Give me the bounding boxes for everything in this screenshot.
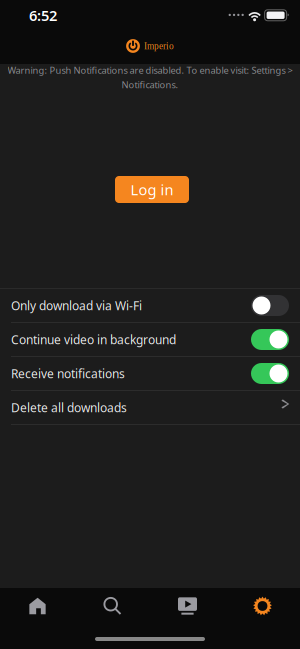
staticText: Receive notifications bbox=[11, 365, 125, 381]
staticText: Warning: Push Notifications are disabled… bbox=[7, 64, 292, 76]
staticText: Only download via Wi-Fi bbox=[11, 297, 142, 313]
staticText: Notifications. bbox=[121, 78, 178, 91]
staticText: Log in bbox=[130, 180, 173, 199]
staticText: 6:52 bbox=[29, 5, 57, 25]
button[interactable]: Search bbox=[75, 596, 150, 616]
button[interactable]: Live TV bbox=[150, 596, 225, 616]
button[interactable]: Continue video in background bbox=[0, 323, 300, 356]
staticText: Imperio bbox=[144, 41, 174, 51]
button[interactable]: Home bbox=[0, 596, 75, 616]
button[interactable]: Only download via Wi-Fi bbox=[0, 289, 300, 322]
button[interactable]: Log in bbox=[115, 176, 189, 203]
button[interactable]: Receive notifications bbox=[0, 357, 300, 390]
staticText: Delete all downloads bbox=[11, 399, 127, 415]
button[interactable]: Delete all downloads bbox=[0, 391, 300, 424]
button[interactable]: Settings bbox=[225, 596, 300, 616]
staticText: Continue video in background bbox=[11, 331, 176, 347]
